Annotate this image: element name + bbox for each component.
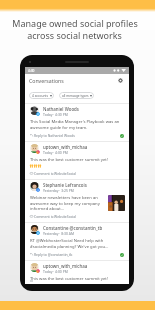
staticText: Manage owned social profiles [12,17,138,29]
staticText: Today · 4:30 PM [43,112,68,117]
button[interactable]: Settings [116,76,125,85]
staticText: Comment is:WebsiteSocial [34,214,76,219]
button[interactable]: Nathaniel Woods [25,104,129,141]
staticText: Conversations [29,77,64,84]
staticText: Comment is:WebsiteSocial [34,171,76,176]
staticText: This was the best customer summit yet! [30,157,108,163]
staticText: Constantine @constantin_tb [43,225,103,231]
button[interactable]: Constantine @constantin_tb [25,223,129,260]
staticText: Webinar newsletters have been an awesome… [30,195,106,211]
staticText: Reply to Nathaniel Woods [34,133,75,138]
staticText: Reply to @constantin_tb [34,252,73,257]
button[interactable]: 4 accounts [29,92,54,99]
staticText: Today · 4:00 PM [43,150,68,155]
staticText: RT @WebhosterSocial Need help with #soci… [30,238,125,249]
staticText: across social networks [27,29,122,41]
button[interactable]: Stephanie Lefrancois [25,180,129,222]
staticText: This Social Media Manager's Playbook was… [30,119,125,130]
staticText: Stephanie Lefrancois [43,182,87,188]
staticText: Nathaniel Woods [43,106,79,112]
staticText: This was the best customer summit yet! [30,276,108,281]
staticText: Yesterday · 3:25 PM [43,188,74,193]
staticText: all message types [62,94,89,98]
staticText: uptown_with_michaa [43,144,88,150]
staticText: Yesterday · 8:30 AM [43,231,74,236]
button[interactable]: uptown_with_michaa [25,142,129,179]
staticText: 4:30 [28,69,35,73]
staticText: Today · 4:00 PM [43,269,68,274]
button[interactable]: uptown_with_michaa [25,261,129,284]
staticText: uptown_with_michaa [43,263,88,269]
staticText: 4 accounts [32,94,49,98]
button[interactable]: all message types [59,92,94,99]
